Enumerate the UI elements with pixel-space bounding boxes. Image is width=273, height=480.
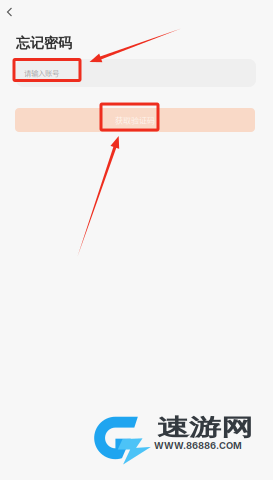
staticText: 请输入账号 bbox=[24, 68, 59, 78]
button[interactable]: 获取验证码 bbox=[15, 108, 255, 132]
button[interactable]: Back bbox=[0, 0, 22, 24]
staticText: WWW.86886.COM bbox=[154, 440, 242, 451]
staticText: 忘记密码 bbox=[16, 34, 72, 52]
staticText: 获取验证码 bbox=[115, 114, 155, 126]
staticText: 速游网 bbox=[157, 413, 253, 453]
